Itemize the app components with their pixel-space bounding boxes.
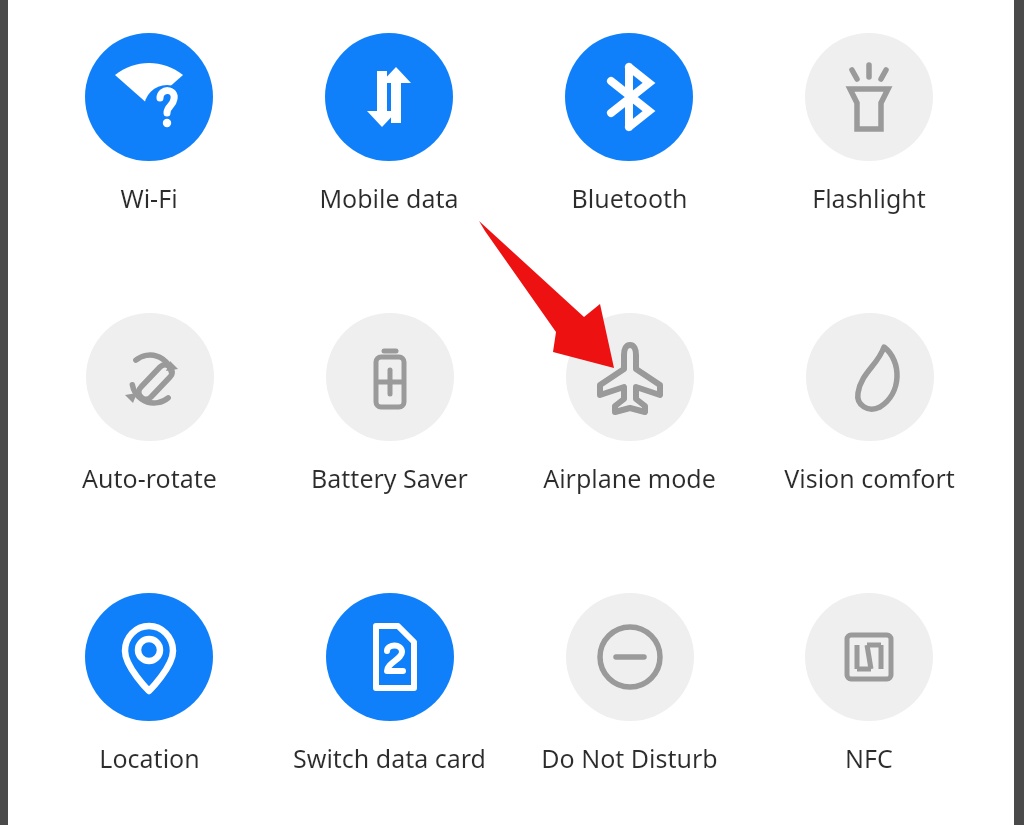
staticText: Mobile data: [319, 181, 459, 215]
button[interactable]: Auto-rotate: [39, 313, 259, 495]
staticText: Switch data card: [293, 741, 486, 775]
button[interactable]: Bluetooth: [519, 33, 739, 215]
staticText: Bluetooth: [571, 181, 688, 215]
button[interactable]: Do Not Disturb: [519, 593, 739, 775]
button[interactable]: Airplane mode: [519, 313, 739, 495]
staticText: NFC: [845, 741, 893, 775]
button[interactable]: Vision comfort: [759, 313, 979, 495]
staticText: Location: [99, 741, 200, 775]
button[interactable]: NFC: [759, 593, 979, 775]
button[interactable]: Flashlight: [759, 33, 979, 215]
button[interactable]: Location: [39, 593, 259, 775]
button[interactable]: Wi-Fi: [39, 33, 259, 215]
staticText: Battery Saver: [311, 461, 468, 495]
button[interactable]: Switch data card: [279, 593, 499, 775]
button[interactable]: Battery Saver: [279, 313, 499, 495]
staticText: Flashlight: [812, 181, 926, 215]
staticText: Auto-rotate: [82, 461, 217, 495]
staticText: Airplane mode: [543, 461, 716, 495]
button[interactable]: Mobile data: [279, 33, 499, 215]
staticText: Do Not Disturb: [541, 741, 718, 775]
staticText: Vision comfort: [784, 461, 955, 495]
staticText: Wi-Fi: [120, 181, 178, 215]
